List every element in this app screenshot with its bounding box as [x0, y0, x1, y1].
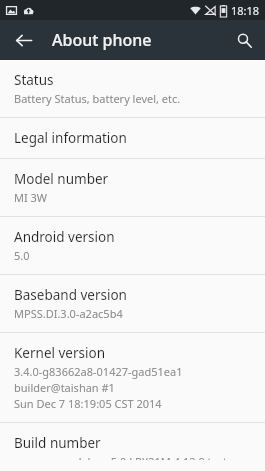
- staticText: cancro-userdebug 5.0 LRX21M 4.12.8 test-…: [14, 454, 251, 460]
- staticText: Model number: [14, 170, 109, 188]
- staticText: MPSS.DI.3.0-a2ac5b4: [14, 306, 123, 321]
- staticText: 18:18: [231, 3, 260, 18]
- button[interactable]: Model number: [0, 159, 265, 216]
- staticText: Build number: [14, 434, 101, 452]
- button[interactable]: Search: [229, 25, 259, 55]
- staticText: builder@taishan #1: [14, 380, 115, 395]
- staticText: 3.4.0-g83662a8-01427-gad51ea1: [14, 364, 183, 379]
- staticText: Sun Dec 7 18:19:05 CST 2014: [14, 396, 162, 411]
- staticText: Status: [14, 71, 54, 89]
- button[interactable]: Legal information: [0, 118, 265, 158]
- button[interactable]: Kernel version: [0, 333, 265, 422]
- staticText: Baseband version: [14, 286, 127, 304]
- button[interactable]: Baseband version: [0, 275, 265, 332]
- staticText: Battery Status, battery level, etc.: [14, 91, 181, 106]
- staticText: MI 3W: [14, 190, 48, 205]
- button[interactable]: Android version: [0, 217, 265, 274]
- staticText: 5.0: [14, 248, 30, 263]
- button[interactable]: Build number: [0, 423, 265, 471]
- staticText: Legal information: [14, 129, 127, 147]
- button[interactable]: Status: [0, 60, 265, 117]
- staticText: About phone: [52, 29, 152, 51]
- staticText: Android version: [14, 228, 115, 246]
- staticText: Kernel version: [14, 344, 106, 362]
- button[interactable]: Back: [8, 25, 38, 55]
